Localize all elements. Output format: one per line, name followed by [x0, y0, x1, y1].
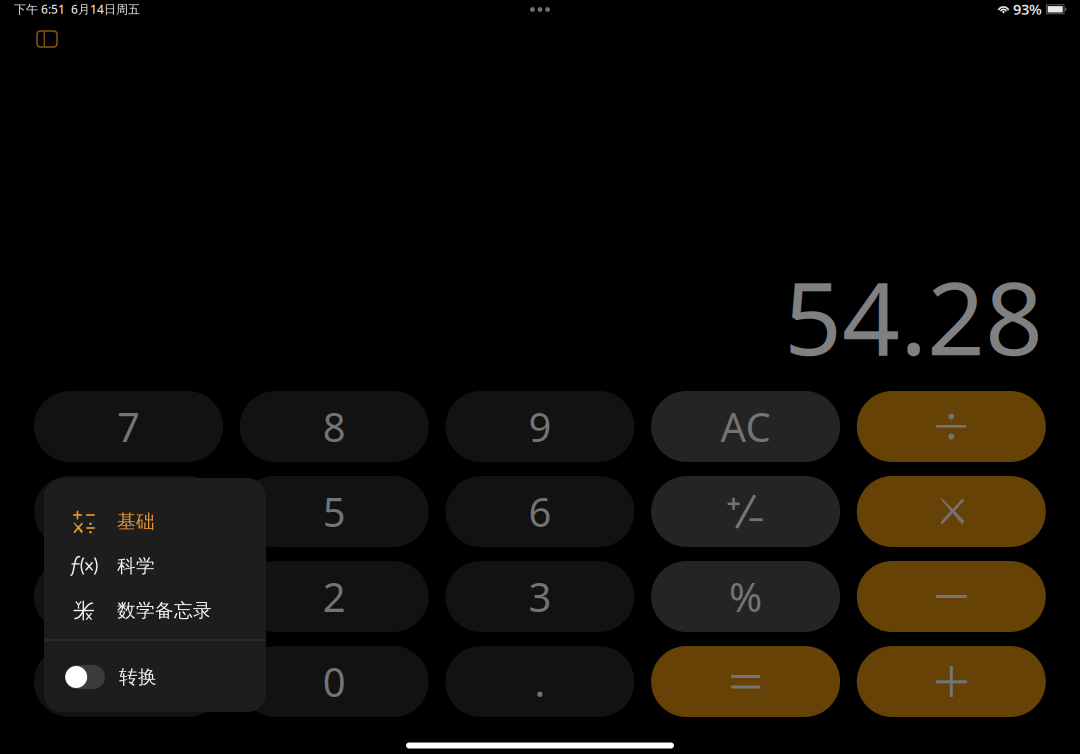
staticText: 54.28 [784, 249, 1043, 383]
staticText: 0 [323, 655, 346, 708]
button[interactable]: Multiply [857, 476, 1046, 547]
button[interactable]: 9 [445, 391, 634, 462]
button[interactable]: 0 [240, 646, 429, 717]
button[interactable]: 数学备忘录 [44, 588, 266, 632]
staticText: 6 [528, 485, 551, 538]
staticText: % [729, 570, 762, 623]
staticText: 4 [117, 485, 140, 538]
staticText: 数学备忘录 [117, 599, 212, 622]
button[interactable]: 5 [240, 476, 429, 547]
staticText: 3 [528, 570, 551, 623]
staticText: 基础 [117, 510, 155, 533]
button[interactable]: 4 [34, 476, 223, 547]
button[interactable]: 2 [240, 561, 429, 632]
staticText: 1 [117, 570, 140, 623]
button[interactable]: AC [651, 391, 840, 462]
staticText: . [534, 655, 545, 708]
button[interactable]: Equals [651, 646, 840, 717]
staticText: 下午 6:51 6月14日周五 [14, 1, 140, 17]
button[interactable]: 7 [34, 391, 223, 462]
staticText: AC [721, 400, 771, 453]
button[interactable]: Plus [857, 646, 1046, 717]
staticText: 转换 [119, 665, 157, 688]
staticText: 7 [117, 400, 140, 453]
button[interactable]: Minus [857, 561, 1046, 632]
button[interactable]: % [651, 561, 840, 632]
button[interactable]: Show sidebar [26, 23, 68, 55]
staticText: 8 [323, 400, 346, 453]
button[interactable]: 科学 [44, 544, 266, 588]
button[interactable]: 8 [240, 391, 429, 462]
button[interactable]: 基础 [44, 499, 266, 543]
staticText: 9 [528, 400, 551, 453]
button[interactable]: Divide [857, 391, 1046, 462]
button[interactable]: 3 [445, 561, 634, 632]
staticText: 5 [323, 485, 346, 538]
staticText: 2 [323, 570, 346, 623]
button[interactable]: 转换 [44, 652, 266, 702]
button[interactable] [34, 646, 223, 717]
button[interactable]: . [445, 646, 634, 717]
button[interactable]: 1 [34, 561, 223, 632]
staticText: 科学 [117, 554, 155, 577]
button[interactable]: Toggle sign [651, 476, 840, 547]
staticText: 93% [1013, 0, 1042, 19]
button[interactable]: 6 [445, 476, 634, 547]
